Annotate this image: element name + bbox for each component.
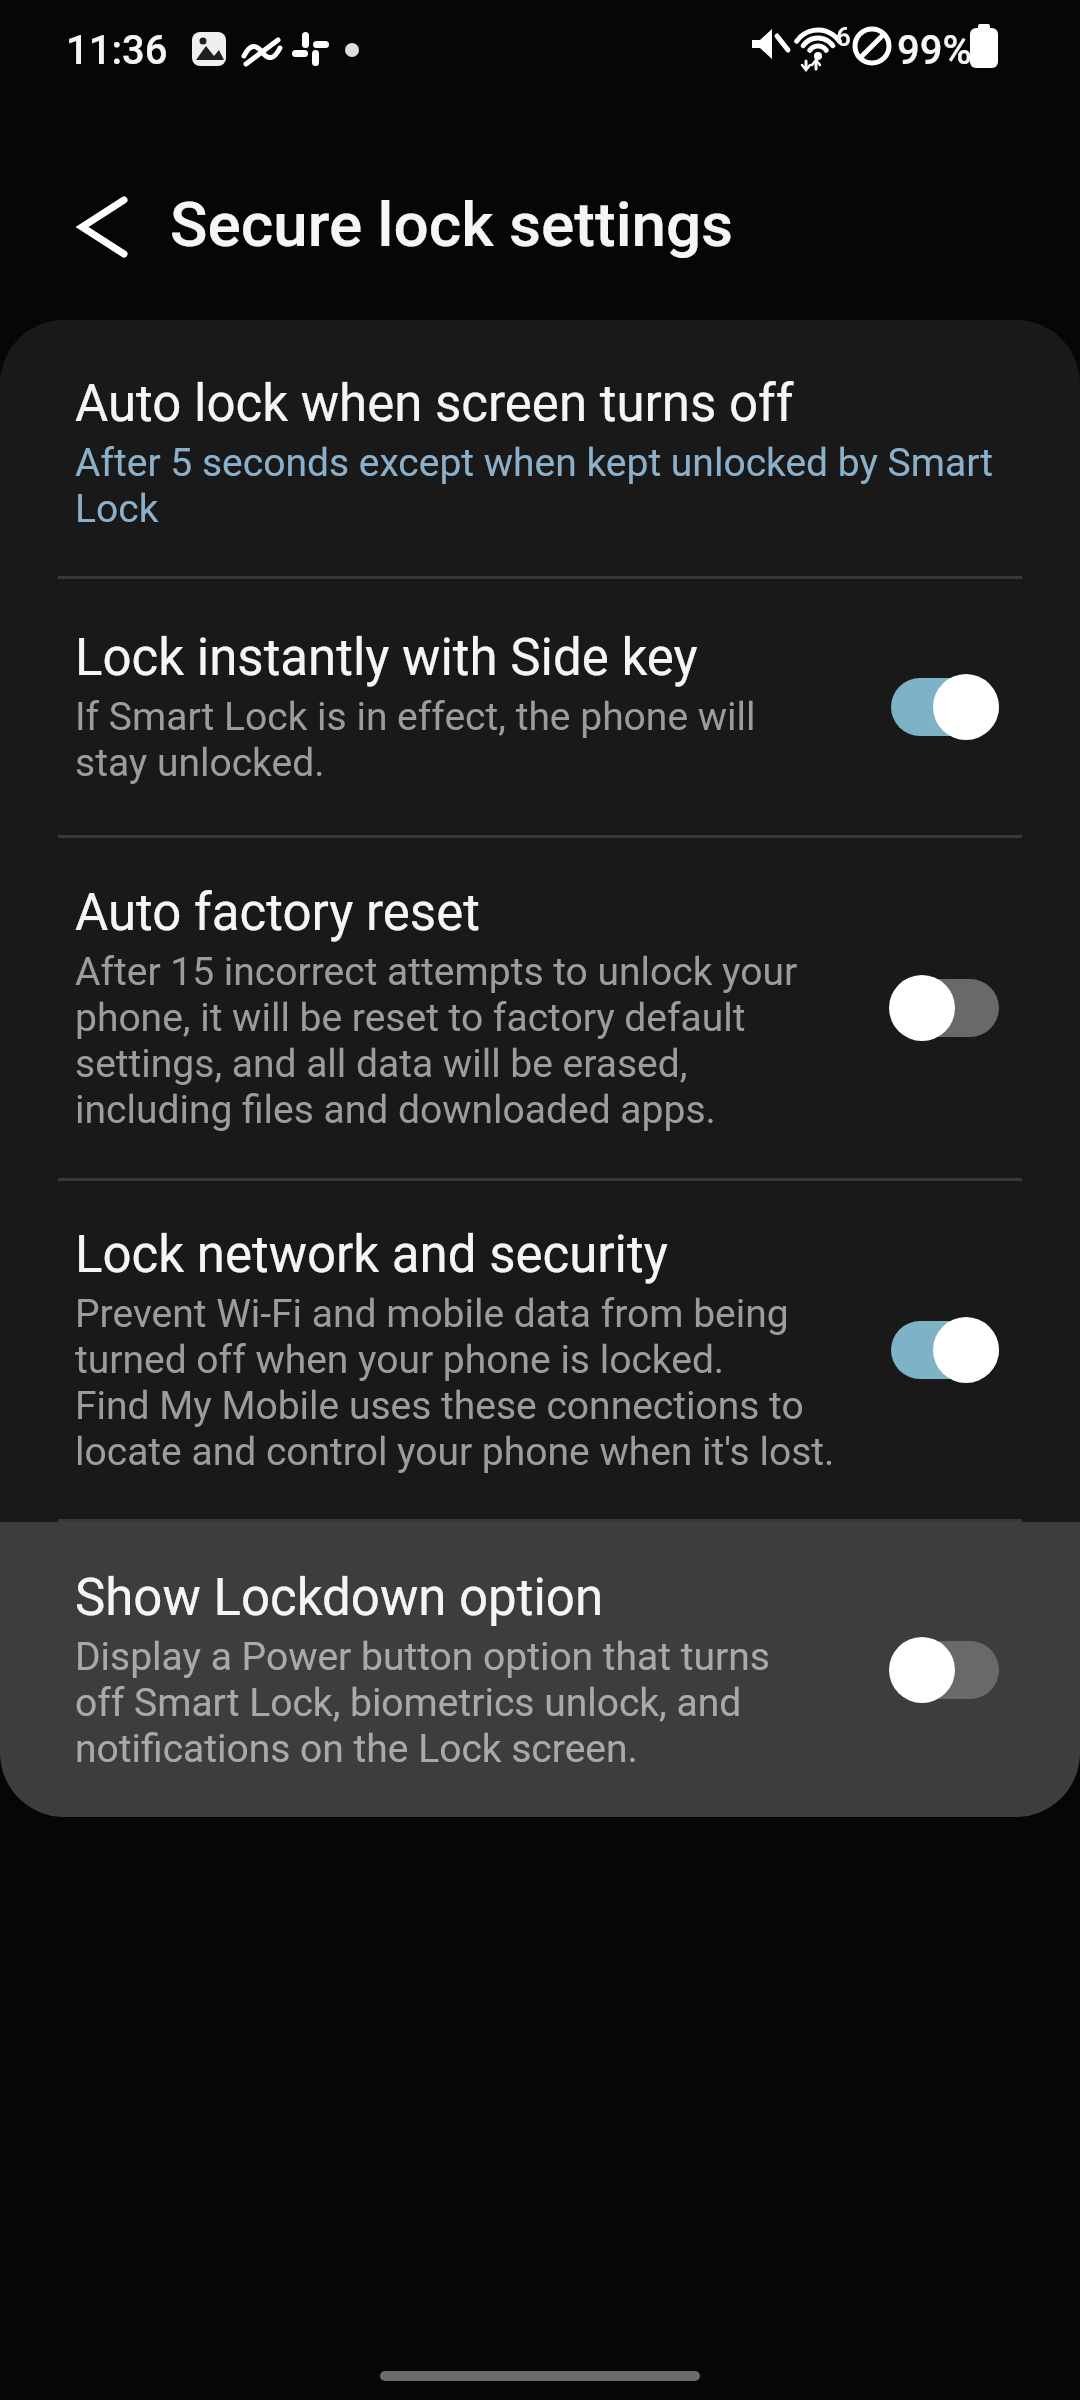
button[interactable]: Show Lockdown option	[0, 1522, 1080, 1817]
staticText: After 15 incorrect attempts to unlock yo…	[75, 949, 798, 1133]
staticText: 6	[836, 22, 851, 52]
button[interactable]: Auto lock when screen turns off	[0, 320, 1080, 576]
staticText: Lock instantly with Side key	[75, 628, 698, 688]
staticText: Secure lock settings	[170, 188, 734, 261]
button[interactable]: Auto factory reset	[0, 838, 1080, 1178]
button[interactable]	[890, 975, 1000, 1041]
staticText: Auto factory reset	[75, 883, 480, 943]
staticText: Prevent Wi-Fi and mobile data from being…	[75, 1291, 835, 1475]
button[interactable]: Lock network and security	[0, 1181, 1080, 1519]
staticText: Lock network and security	[75, 1225, 668, 1285]
staticText: After 5 seconds except when kept unlocke…	[75, 440, 994, 532]
staticText: Show Lockdown option	[75, 1568, 604, 1628]
button[interactable]	[62, 187, 142, 267]
button[interactable]: Lock instantly with Side key	[0, 579, 1080, 835]
button[interactable]	[890, 1317, 1000, 1383]
staticText: If Smart Lock is in effect, the phone wi…	[75, 694, 756, 786]
button[interactable]	[890, 674, 1000, 740]
staticText: 99%	[897, 27, 972, 74]
button[interactable]	[890, 1637, 1000, 1703]
staticText: Display a Power button option that turns…	[75, 1634, 770, 1772]
staticText: 11:36	[66, 27, 168, 74]
staticText: Auto lock when screen turns off	[75, 374, 794, 434]
